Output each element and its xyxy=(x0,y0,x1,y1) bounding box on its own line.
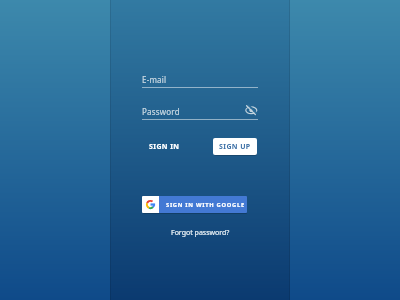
staticText: SIGN IN WITH GOOGLE xyxy=(166,201,245,209)
staticText: Forgot password? xyxy=(171,228,230,238)
staticText: SIGN UP xyxy=(219,142,251,152)
button[interactable] xyxy=(245,104,258,117)
button[interactable]: SIGN UP xyxy=(213,138,257,155)
staticText: SIGN IN xyxy=(149,142,180,152)
button[interactable]: Forgot password? xyxy=(165,224,235,241)
staticText: Password xyxy=(142,106,180,117)
button[interactable]: Password xyxy=(140,102,260,121)
button[interactable]: SIGN IN WITH GOOGLE xyxy=(142,196,247,213)
staticText: E-mail xyxy=(142,74,167,85)
button[interactable]: SIGN IN xyxy=(138,138,190,155)
button[interactable]: E-mail xyxy=(140,70,260,89)
